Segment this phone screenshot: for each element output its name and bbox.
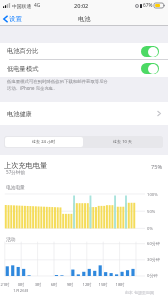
button[interactable]: 低电量模式 bbox=[0, 60, 168, 77]
staticText: 75% bbox=[151, 163, 163, 171]
staticText: 由本 包源至如网 bbox=[125, 290, 155, 295]
button[interactable]: 过去 24 小时 bbox=[5, 137, 83, 147]
staticText: 活动 bbox=[6, 236, 16, 242]
staticText: 电池百分比 bbox=[7, 47, 39, 55]
staticText: 60分钟 bbox=[147, 241, 161, 247]
staticText: 9时 bbox=[63, 282, 77, 288]
staticText: 上次充电电量 bbox=[4, 161, 48, 170]
staticText: 4G bbox=[34, 2, 41, 9]
staticText: 设置 bbox=[9, 15, 23, 23]
staticText: 电池健康 bbox=[7, 110, 32, 118]
staticText: 过去 24 小时 bbox=[32, 139, 56, 145]
staticText: 50% bbox=[147, 209, 156, 215]
staticText: 21时 bbox=[0, 282, 12, 288]
button[interactable]: 电池健康 bbox=[0, 102, 168, 125]
staticText: 12时 bbox=[80, 282, 94, 288]
staticText: 100% bbox=[147, 192, 158, 198]
staticText: 低电量模式 bbox=[7, 65, 39, 73]
staticText: 电池电量 bbox=[6, 184, 25, 190]
staticText: 低电量模式可在到时降低你的下载和邮件获取等后台活动。iPhone 完全充电。 bbox=[7, 79, 110, 91]
staticText: 3时 bbox=[31, 282, 45, 288]
staticText: 中国联通 bbox=[12, 3, 32, 9]
staticText: 电池 bbox=[78, 15, 91, 23]
button[interactable]: 电池百分比 bbox=[0, 43, 168, 59]
staticText: 6时 bbox=[47, 282, 61, 288]
staticText: 57分钟前 bbox=[6, 169, 26, 175]
staticText: 1月26日 bbox=[10, 288, 32, 294]
staticText: 30分钟 bbox=[147, 257, 161, 263]
staticText: 过去 10 天 bbox=[113, 139, 133, 145]
button[interactable]: 设置 bbox=[0, 15, 27, 23]
staticText: 15时 bbox=[96, 282, 110, 288]
staticText: 67% bbox=[143, 2, 153, 9]
button[interactable]: 过去 10 天 bbox=[83, 137, 162, 147]
staticText: 0分钟 bbox=[147, 273, 158, 279]
staticText: 0时 bbox=[14, 282, 28, 288]
staticText: 20:02 bbox=[74, 2, 89, 10]
staticText: 0% bbox=[147, 226, 153, 232]
staticText: 18时 bbox=[113, 282, 127, 288]
